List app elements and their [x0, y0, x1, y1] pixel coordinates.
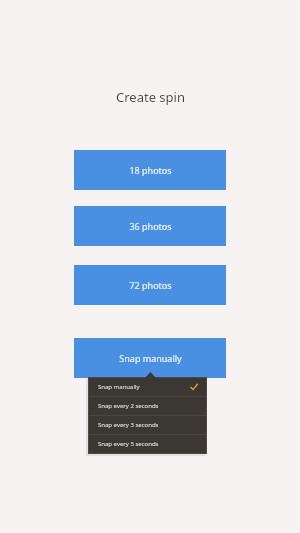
staticText: Snap manually [98, 383, 190, 391]
button[interactable]: Snap every 5 seconds [89, 435, 206, 453]
staticText: 36 photos [129, 220, 172, 232]
button[interactable]: Snap every 2 seconds [89, 397, 206, 415]
button[interactable]: Snap manually [89, 378, 206, 396]
staticText: Snap every 2 seconds [98, 402, 198, 410]
staticText: Create spin [116, 88, 185, 106]
button[interactable]: Snap manually [74, 338, 226, 378]
button[interactable]: 72 photos [74, 265, 226, 305]
staticText: 18 photos [129, 164, 172, 176]
staticText: Snap every 5 seconds [98, 440, 198, 448]
button[interactable]: 18 photos [74, 150, 226, 190]
staticText: Snap every 3 seconds [98, 421, 198, 429]
staticText: 72 photos [129, 279, 172, 291]
button[interactable]: Snap every 3 seconds [89, 416, 206, 434]
other: Menu pointer [145, 372, 156, 378]
staticText: Snap manually [119, 352, 182, 364]
button[interactable]: 36 photos [74, 206, 226, 246]
